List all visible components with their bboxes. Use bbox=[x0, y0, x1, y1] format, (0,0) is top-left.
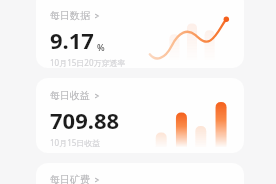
button[interactable]: 每日矿费 bbox=[36, 163, 244, 184]
staticText: 每日收益 bbox=[50, 89, 90, 102]
other: More bbox=[94, 12, 100, 20]
staticText: % bbox=[97, 41, 105, 53]
staticText: 每日矿费 bbox=[50, 173, 90, 184]
button[interactable]: 每日收益 bbox=[36, 78, 244, 153]
other: More bbox=[94, 92, 100, 100]
staticText: 每日数据 bbox=[50, 9, 90, 22]
staticText: 10月15日20万穿透率 bbox=[50, 57, 126, 68]
button[interactable]: 每日数据 bbox=[36, 0, 244, 68]
other: More bbox=[94, 176, 100, 184]
staticText: 9.17 bbox=[50, 25, 94, 55]
staticText: 10月15日收益 bbox=[50, 137, 101, 148]
staticText: 709.88 bbox=[50, 105, 120, 135]
